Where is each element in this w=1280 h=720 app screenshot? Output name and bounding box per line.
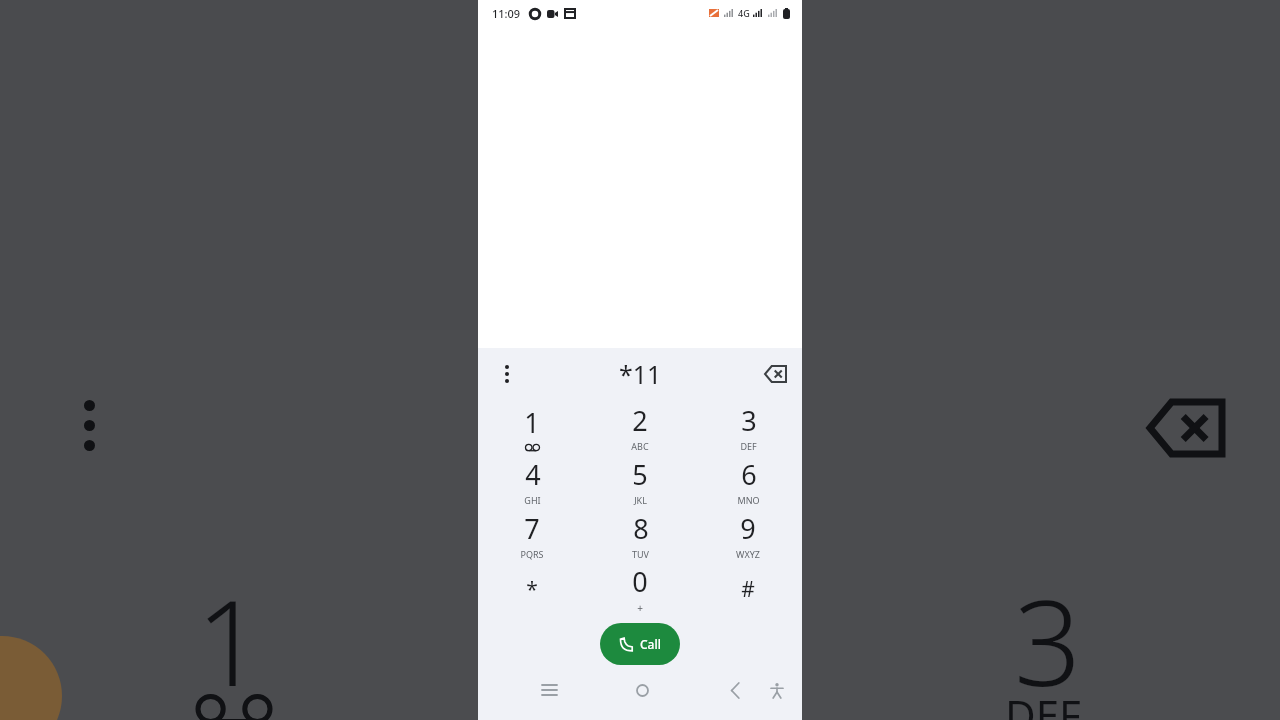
button[interactable]: More options [490,357,524,391]
staticText: 3 [741,402,757,439]
staticText: 7 [524,510,540,547]
button[interactable]: 2 [586,400,694,454]
button[interactable]: Backspace [758,357,792,391]
staticText: * [526,575,538,604]
button[interactable]: 1 [478,400,586,454]
staticText: WXYZ [736,548,760,560]
staticText: 11:09 [492,6,521,21]
staticText: 4G [738,7,750,19]
button[interactable]: Recent apps [532,673,566,707]
staticText: # [741,575,755,604]
button[interactable]: 0 [586,562,694,616]
button[interactable]: 9 [694,508,802,562]
staticText: 8 [633,510,649,547]
button[interactable]: 6 [694,454,802,508]
button[interactable]: 5 [586,454,694,508]
staticText: 6 [741,456,757,493]
staticText: TUV [632,548,649,560]
staticText: 1 [196,560,264,720]
button[interactable]: Home [625,673,659,707]
staticText: 0 [632,563,648,600]
staticText: 3 [1014,560,1082,720]
staticText: JKL [634,494,647,506]
button[interactable]: * [478,562,586,616]
staticText: Call [640,636,661,652]
button[interactable]: 7 [478,508,586,562]
button[interactable]: 3 [694,400,802,454]
staticText: 2 [632,402,648,439]
staticText: 4 [525,456,541,493]
staticText: *11 [619,357,662,391]
staticText: MNO [737,494,760,506]
staticText: 9 [740,510,756,547]
staticText: DEF [740,440,757,452]
button[interactable]: # [694,562,802,616]
button[interactable]: Call [600,623,680,665]
button[interactable]: 4 [478,454,586,508]
button[interactable]: Back [718,673,752,707]
staticText: 1 [524,404,540,441]
staticText: GHI [524,494,541,506]
staticText: ABC [631,440,649,452]
staticText: 5 [632,456,648,493]
staticText: DEF [1005,686,1081,720]
staticText: + [637,601,643,615]
button[interactable]: 8 [586,508,694,562]
button[interactable]: Accessibility [762,675,792,705]
staticText: PQRS [520,548,544,560]
